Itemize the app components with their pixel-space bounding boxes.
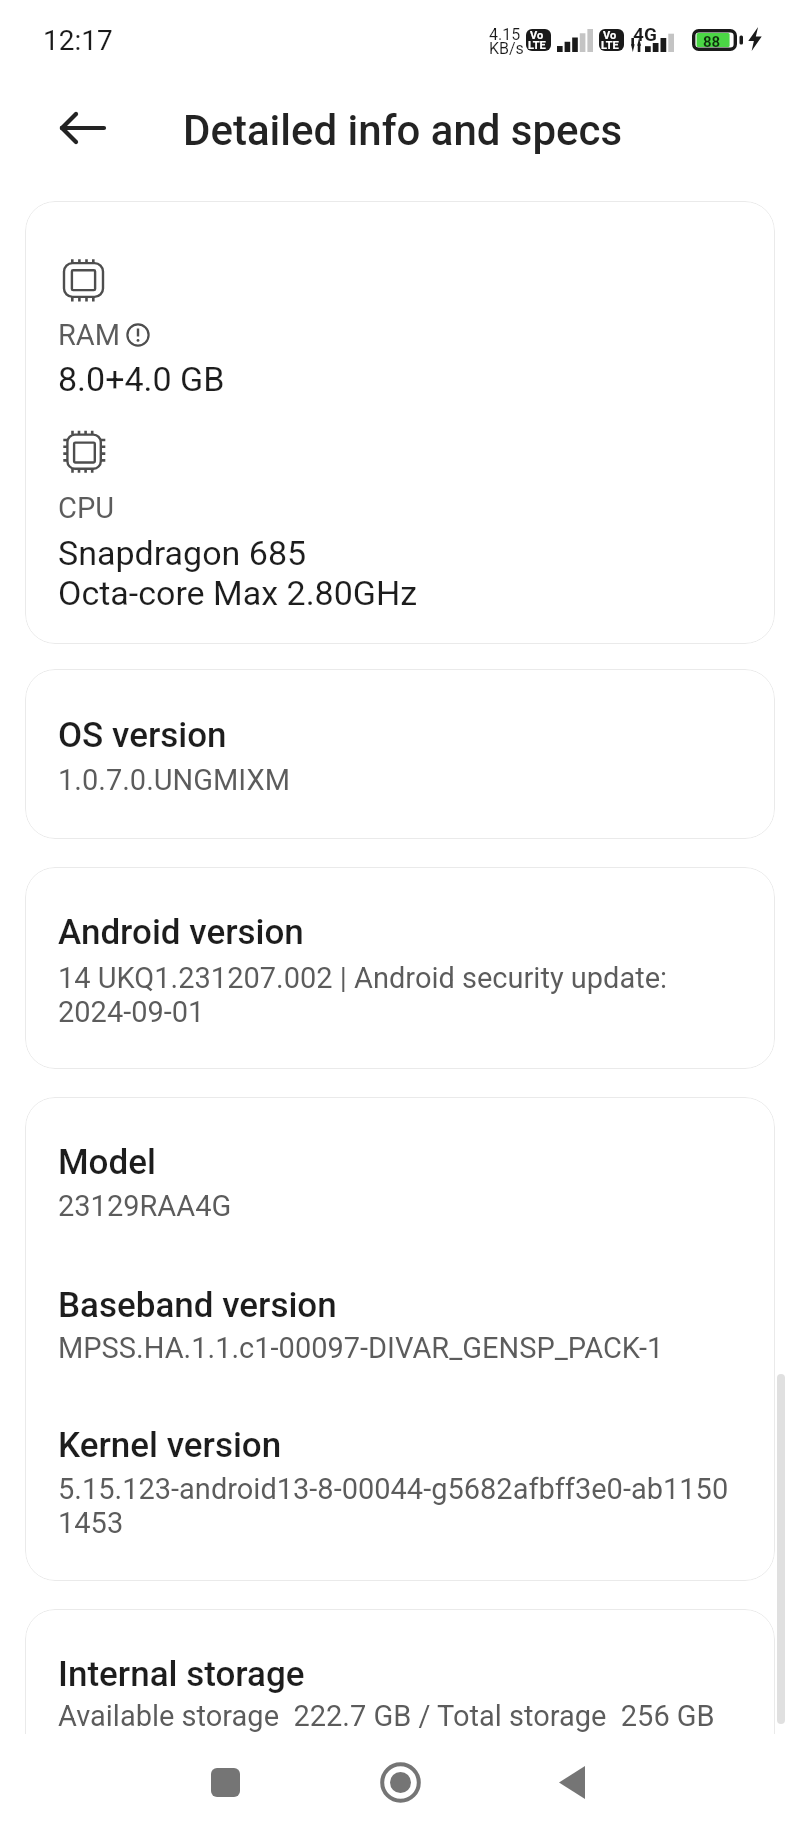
- staticText: Internal storage: [58, 1654, 305, 1695]
- staticText: KB/s: [489, 39, 524, 58]
- staticText: 4.15: [489, 25, 521, 44]
- staticText: Snapdragon 685 Octa-core Max 2.80GHz: [58, 533, 418, 613]
- staticText: CPU: [58, 491, 114, 525]
- staticText: 14 UKQ1.231207.002 | Android security up…: [58, 961, 668, 1029]
- staticText: 12:17: [43, 24, 113, 57]
- button[interactable]: Model: [25, 1097, 775, 1581]
- staticText: Detailed info and specs: [183, 106, 623, 155]
- staticText: Vo: [603, 29, 617, 42]
- staticText: Available storage 222.7 GB / Total stora…: [58, 1699, 715, 1733]
- button[interactable]: Android version: [25, 867, 775, 1069]
- button[interactable]: OS version: [25, 669, 775, 839]
- staticText: LTE: [528, 39, 546, 51]
- staticText: 5.15.123-android13-8-00044-g5682afbff3e0…: [58, 1472, 729, 1540]
- button[interactable]: Internal storage: [25, 1609, 775, 1734]
- staticText: 8.0+4.0 GB: [58, 359, 225, 399]
- staticText: MPSS.HA.1.1.c1-00097-DIVAR_GENSP_PACK-1: [58, 1331, 664, 1365]
- staticText: 23129RAA4G: [58, 1189, 232, 1223]
- staticText: 4G: [633, 23, 657, 45]
- staticText: Android version: [58, 912, 304, 953]
- staticText: 88: [703, 33, 721, 51]
- button[interactable]: RAM: [25, 201, 775, 644]
- staticText: OS version: [58, 715, 227, 756]
- staticText: Model: [58, 1142, 156, 1183]
- staticText: 1.0.7.0.UNGMIXM: [58, 763, 290, 797]
- staticText: RAM: [58, 318, 121, 352]
- button[interactable]: Back: [48, 93, 117, 162]
- button[interactable]: Back: [527, 1737, 617, 1827]
- staticText: Vo: [530, 29, 544, 42]
- button[interactable]: Recents: [180, 1737, 270, 1827]
- button[interactable]: Home: [355, 1737, 445, 1827]
- staticText: Baseband version: [58, 1285, 337, 1326]
- staticText: LTE: [601, 39, 619, 51]
- staticText: Kernel version: [58, 1425, 282, 1466]
